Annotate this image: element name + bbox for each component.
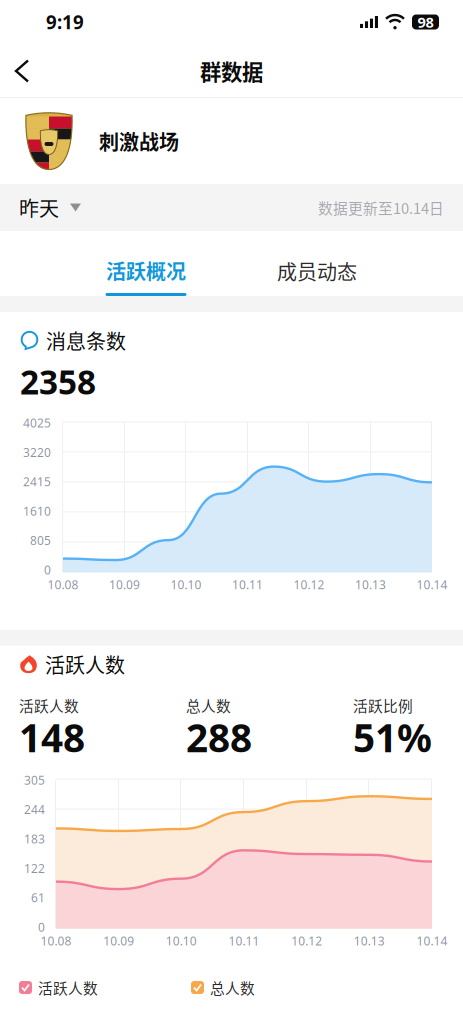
staticText: 总人数 xyxy=(186,695,231,716)
staticText: 51% xyxy=(353,711,432,764)
staticText: 10.14 xyxy=(416,933,447,949)
staticText: 3220 xyxy=(23,444,51,460)
staticText: 活跃人数 xyxy=(45,650,125,679)
staticText: 1610 xyxy=(23,503,51,519)
staticText: 2415 xyxy=(23,473,51,490)
staticText: 10.12 xyxy=(293,576,324,593)
staticText: 10.14 xyxy=(416,576,447,593)
button[interactable]: 总人数 xyxy=(191,977,255,998)
staticText: 122 xyxy=(24,860,45,876)
staticText: 0 xyxy=(44,562,51,578)
staticText: 总人数 xyxy=(210,977,255,998)
button[interactable]: Back xyxy=(0,46,46,95)
staticText: 活跃人数 xyxy=(19,695,79,716)
staticText: 10.08 xyxy=(47,576,78,593)
staticText: 群数据 xyxy=(200,56,263,86)
staticText: 消息条数 xyxy=(46,326,126,355)
staticText: 活跃概况 xyxy=(106,256,186,285)
staticText: 0 xyxy=(38,919,45,935)
staticText: 10.13 xyxy=(355,576,386,593)
staticText: 10.10 xyxy=(170,576,201,593)
staticText: 61 xyxy=(31,889,45,906)
staticText: 数据更新至10.14日 xyxy=(318,197,444,218)
staticText: 98 xyxy=(417,12,433,32)
staticText: 805 xyxy=(30,532,51,549)
button[interactable]: 昨天 xyxy=(0,181,81,234)
staticText: 刺激战场 xyxy=(99,126,179,155)
staticText: 10.09 xyxy=(103,933,134,949)
button[interactable]: 成员动态 xyxy=(257,256,377,286)
staticText: 305 xyxy=(24,772,45,788)
staticText: 4025 xyxy=(23,415,51,431)
staticText: 9:19 xyxy=(46,9,84,35)
staticText: 10.13 xyxy=(354,933,385,949)
button[interactable]: 活跃人数 xyxy=(19,977,98,998)
staticText: 10.09 xyxy=(109,576,140,593)
staticText: 10.08 xyxy=(40,933,71,949)
staticText: 183 xyxy=(24,831,45,847)
staticText: 244 xyxy=(24,801,45,818)
button[interactable]: 活跃概况 xyxy=(0,231,292,296)
staticText: 成员动态 xyxy=(277,256,357,285)
staticText: 2358 xyxy=(20,359,96,404)
staticText: 10.11 xyxy=(232,576,263,593)
staticText: 昨天 xyxy=(19,193,59,222)
staticText: 10.11 xyxy=(228,933,259,949)
staticText: 148 xyxy=(19,711,85,764)
staticText: 活跃人数 xyxy=(38,977,98,998)
staticText: 活跃比例 xyxy=(353,695,413,716)
staticText: 10.10 xyxy=(166,933,197,949)
staticText: 288 xyxy=(186,711,252,764)
staticText: 10.12 xyxy=(291,933,322,949)
